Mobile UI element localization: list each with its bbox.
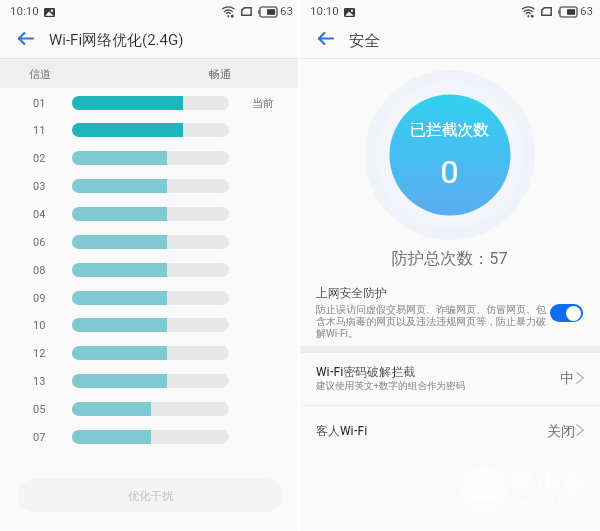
staticText: 05	[33, 403, 46, 416]
button[interactable]: 10	[0, 311, 298, 339]
button[interactable]: 11	[0, 116, 298, 144]
staticText: 当前	[252, 96, 274, 110]
staticText: 优化干扰	[128, 489, 174, 503]
staticText: 01	[33, 97, 46, 110]
staticText: 63	[280, 4, 293, 17]
button[interactable]: 13	[0, 367, 298, 395]
button[interactable]: 优化干扰	[18, 479, 283, 512]
staticText: 03	[33, 180, 46, 193]
button[interactable]: Back	[309, 23, 342, 54]
button[interactable]: 01	[0, 89, 298, 117]
staticText: 13	[33, 375, 46, 388]
staticText: 关闭	[547, 423, 575, 441]
button[interactable]: Back	[9, 23, 42, 54]
button[interactable]: 08	[0, 256, 298, 284]
staticText: 10:10	[10, 4, 39, 17]
staticText: 07	[33, 431, 46, 444]
button[interactable]: 07	[0, 423, 298, 451]
staticText: 10:10	[310, 4, 339, 17]
staticText: Wi-Fi密码破解拦截	[316, 364, 416, 379]
button[interactable]: 02	[0, 144, 298, 172]
staticText: 信道	[29, 67, 51, 81]
staticText: 中	[560, 370, 574, 388]
button[interactable]: 09	[0, 284, 298, 312]
button[interactable]: 12	[0, 339, 298, 367]
staticText: 客人Wi-Fi	[316, 423, 368, 438]
staticText: 安全	[349, 31, 380, 51]
button[interactable]: 04	[0, 200, 298, 228]
staticText: 畅通	[209, 67, 231, 81]
staticText: 防止误访问虚假交易网页、诈骗网页、仿冒网页、包含木马病毒的网页以及违法违规网页等…	[316, 303, 546, 340]
staticText: 10	[33, 319, 46, 332]
staticText: 04	[33, 208, 46, 221]
button[interactable]	[300, 277, 600, 346]
staticText: 11	[33, 124, 46, 137]
button[interactable]: 06	[0, 228, 298, 256]
staticText: 08	[33, 264, 46, 277]
staticText: 63	[580, 4, 593, 17]
button[interactable]: Toggle web protection	[550, 304, 583, 322]
staticText: 09	[33, 292, 46, 305]
button[interactable]: 05	[0, 395, 298, 423]
staticText: 已拦截次数	[300, 120, 599, 140]
staticText: Wi-Fi网络优化(2.4G)	[49, 31, 184, 50]
staticText: 02	[33, 152, 46, 165]
staticText: 上网安全防护	[316, 286, 387, 301]
staticText: 防护总次数：57	[300, 248, 599, 269]
button[interactable]: 03	[0, 172, 298, 200]
staticText: 12	[33, 347, 46, 360]
staticText: 0	[300, 153, 599, 191]
button[interactable]	[300, 406, 600, 457]
button[interactable]	[300, 353, 600, 405]
staticText: 06	[33, 236, 46, 249]
staticText: 建议使用英文+数字的组合作为密码	[316, 380, 466, 392]
